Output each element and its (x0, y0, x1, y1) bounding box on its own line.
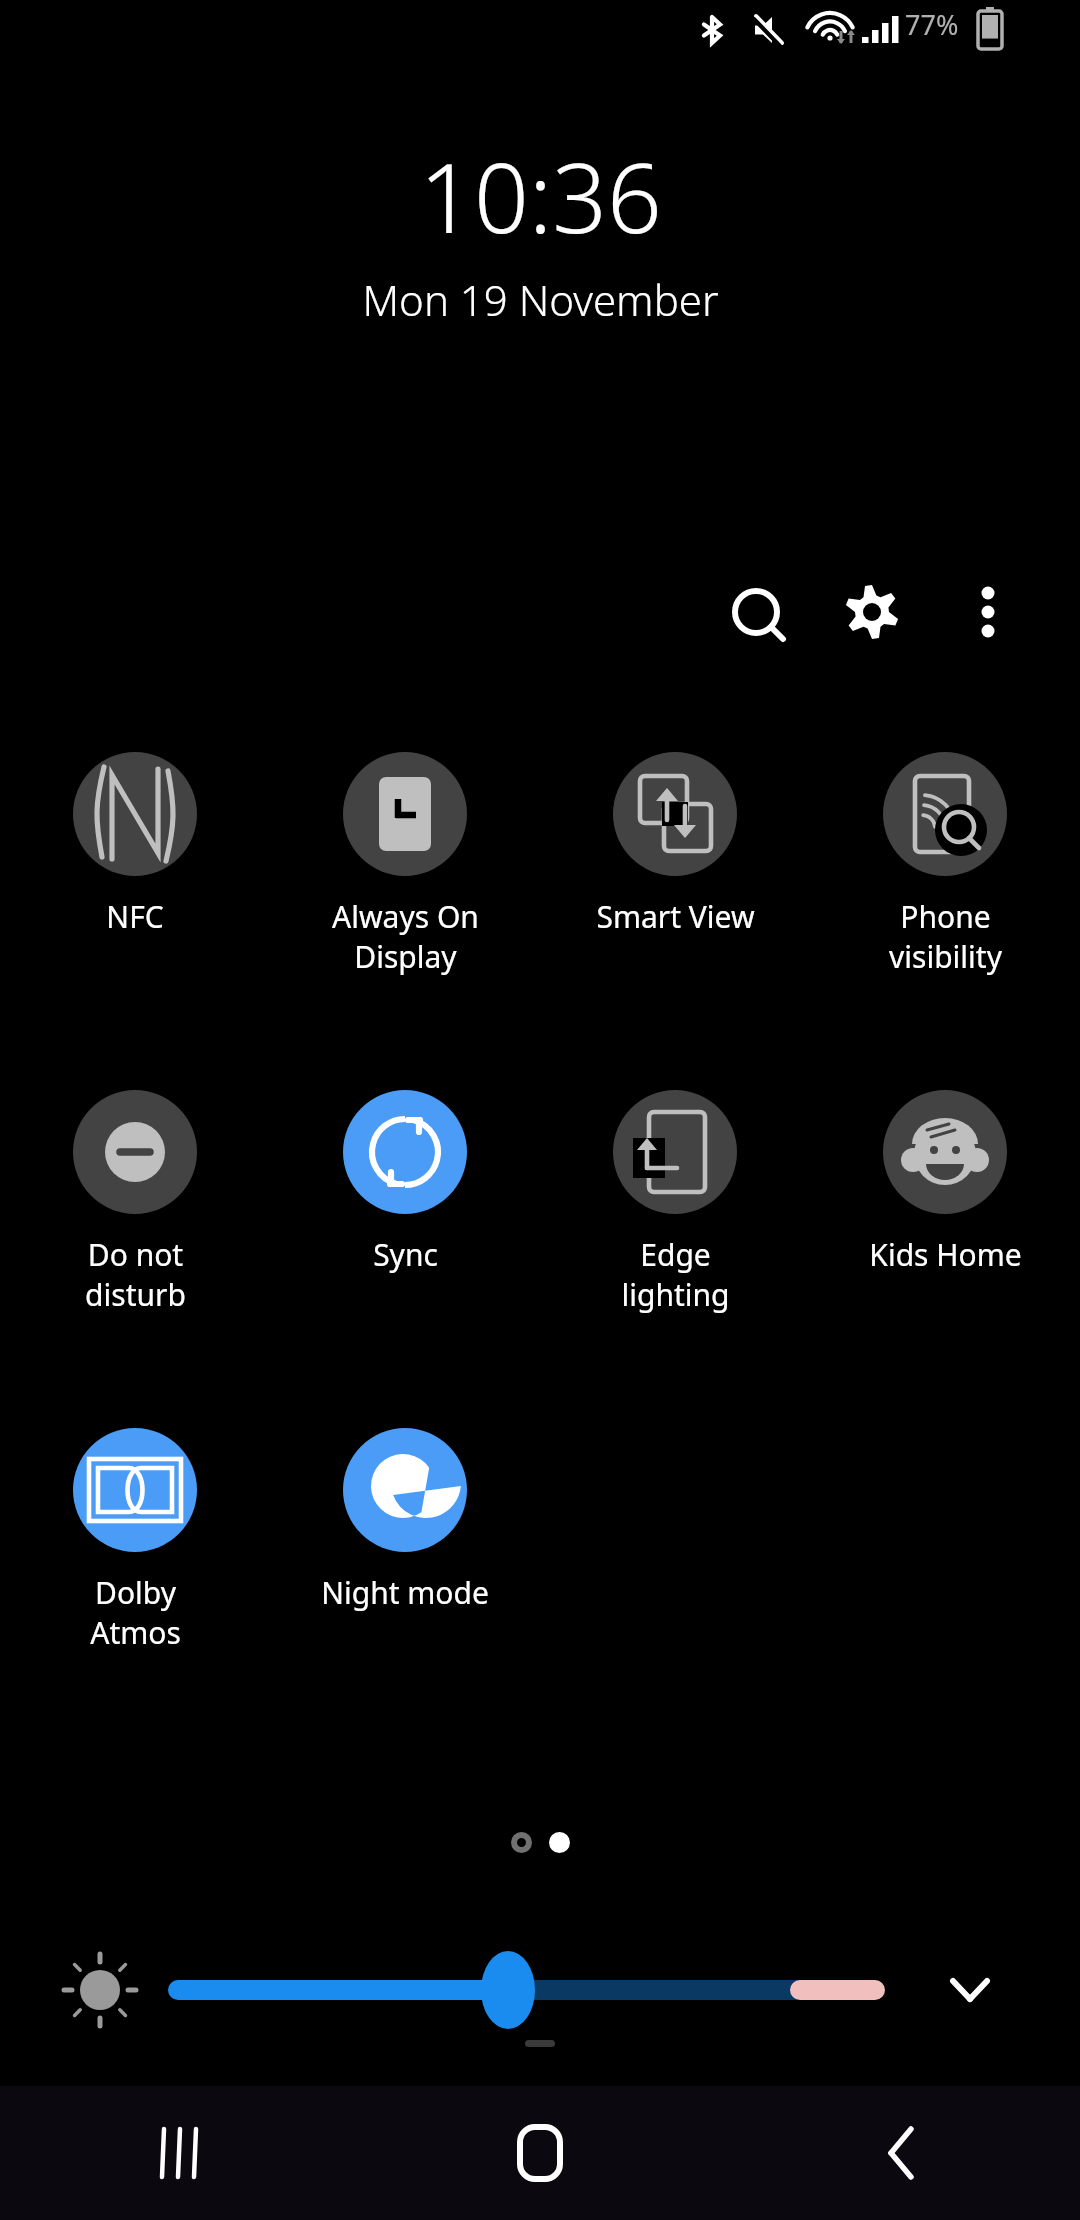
staticText: 10:36 (419, 130, 662, 261)
button[interactable]: Expand brightness settings (950, 1945, 1040, 2035)
staticText: Edge lighting (621, 1234, 730, 1315)
button[interactable]: Brightness (60, 1945, 680, 2035)
button[interactable]: Dolby Atmos (0, 1428, 270, 1653)
staticText: Night mode (321, 1572, 489, 1613)
button[interactable]: NFC (0, 752, 270, 937)
button[interactable]: Settings (830, 570, 914, 654)
button[interactable]: Smart View (540, 752, 810, 937)
button[interactable]: Page 2 (549, 1832, 570, 1853)
button[interactable]: Search (714, 570, 798, 654)
button[interactable]: Page 1 (511, 1832, 532, 1853)
button[interactable]: More options (946, 570, 1030, 654)
button[interactable]: Kids Home (810, 1090, 1080, 1275)
button[interactable]: Do not disturb (0, 1090, 270, 1315)
staticText: Always On Display (332, 896, 479, 977)
staticText: Mon 19 November (362, 271, 719, 328)
staticText: Smart View (596, 896, 755, 937)
staticText: Kids Home (869, 1234, 1022, 1275)
staticText: Phone visibility (889, 896, 1002, 977)
staticText: 77% (905, 6, 959, 43)
button[interactable]: Night mode (270, 1428, 540, 1613)
staticText: Sync (373, 1234, 438, 1275)
staticText: Do not disturb (85, 1234, 186, 1315)
button[interactable]: Sync (270, 1090, 540, 1275)
button[interactable]: Home (360, 2086, 720, 2220)
button[interactable]: Always On Display (270, 752, 540, 977)
button[interactable]: Edge lighting (540, 1090, 810, 1315)
button[interactable]: Recents (0, 2086, 360, 2220)
staticText: Dolby Atmos (90, 1572, 181, 1653)
button[interactable]: Phone visibility (810, 752, 1080, 977)
staticText: NFC (106, 896, 164, 937)
button[interactable]: Back (720, 2086, 1080, 2220)
